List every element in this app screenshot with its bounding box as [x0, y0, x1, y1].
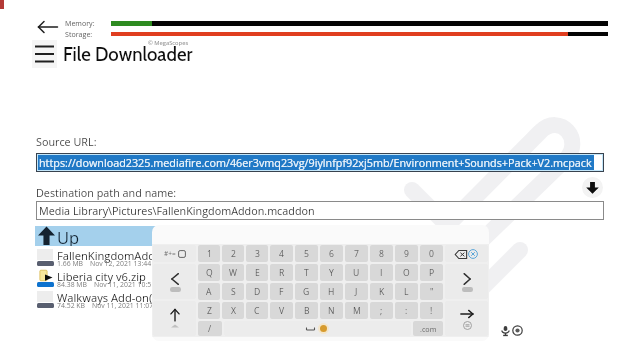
button[interactable]: R	[270, 264, 293, 281]
button[interactable]: F	[270, 283, 293, 300]
button[interactable]: G	[295, 283, 318, 300]
staticText: .com	[420, 324, 437, 334]
staticText: I	[380, 267, 383, 279]
staticText: Media Library\Pictures\FallenKingdomAddo…	[39, 203, 315, 218]
button[interactable]: :	[395, 302, 418, 319]
staticText: :	[405, 305, 408, 317]
staticText: https://download2325.mediafire.com/46er3…	[39, 155, 592, 170]
button[interactable]: V	[270, 302, 293, 319]
staticText: G	[303, 286, 310, 298]
button[interactable]: J	[345, 283, 368, 300]
staticText: Nov 11, 2021 10:5	[94, 280, 152, 289]
staticText: N	[328, 305, 335, 317]
button[interactable]: T	[295, 264, 318, 281]
staticText: Walkways Add-on(v1	[57, 290, 165, 305]
button[interactable]: U	[345, 264, 368, 281]
staticText: 7	[354, 248, 359, 260]
staticText: T	[304, 267, 309, 279]
button[interactable]: P	[420, 264, 443, 281]
staticText: 74.52 KB	[57, 301, 86, 310]
staticText: F	[279, 286, 284, 298]
staticText: FallenKingdomAddon.mcad	[57, 248, 201, 263]
button[interactable]: 3	[246, 245, 268, 262]
button[interactable]: /	[198, 321, 222, 336]
staticText: Destination path and name:	[36, 185, 177, 200]
button[interactable]: 4	[270, 245, 293, 262]
staticText: 9	[404, 248, 409, 260]
staticText: ;	[380, 305, 383, 317]
staticText: Nov 12, 2021 13:44	[90, 259, 152, 268]
button[interactable]: Q	[198, 264, 220, 281]
staticText: W	[229, 267, 237, 279]
button[interactable]: E	[246, 264, 268, 281]
button[interactable]: Media Library\Pictures\FallenKingdomAddo…	[36, 201, 604, 220]
staticText: Up	[57, 226, 80, 246]
button[interactable]: M	[345, 302, 368, 319]
button[interactable]: FallenKingdomAddon.mcad	[35, 247, 317, 268]
staticText: /	[208, 323, 212, 335]
button[interactable]: K	[370, 283, 393, 300]
button[interactable]: Y	[320, 264, 343, 281]
staticText: U	[353, 267, 360, 279]
button[interactable]: https://download2325.mediafire.com/46er3…	[36, 153, 604, 172]
button[interactable]: Up	[35, 226, 317, 246]
button[interactable]: Next field	[445, 264, 488, 299]
button[interactable]: !	[420, 302, 443, 319]
button[interactable]: L	[395, 283, 418, 300]
staticText: L	[404, 286, 409, 298]
staticText: 8	[379, 248, 384, 260]
button[interactable]: Walkways Add-on(v1	[35, 289, 317, 310]
button[interactable]: Menu	[32, 40, 57, 68]
button[interactable]: H	[320, 283, 343, 300]
staticText: S	[231, 286, 236, 298]
button[interactable]: Download	[582, 177, 603, 198]
button[interactable]: ;	[370, 302, 393, 319]
button[interactable]: Voice input	[501, 325, 523, 336]
staticText: A	[206, 286, 212, 298]
button[interactable]: X	[222, 302, 244, 319]
button[interactable]: Symbols	[153, 245, 196, 262]
staticText: "	[430, 286, 434, 298]
button[interactable]: 2	[222, 245, 244, 262]
button[interactable]: Space	[224, 321, 411, 336]
staticText: Y	[329, 267, 334, 279]
staticText: Source URL:	[36, 134, 97, 149]
staticText: Storage:	[65, 29, 93, 39]
button[interactable]: N	[320, 302, 343, 319]
button[interactable]: 7	[345, 245, 368, 262]
button[interactable]: .com	[413, 321, 443, 336]
button[interactable]: "	[420, 283, 443, 300]
button[interactable]: Shift	[153, 264, 196, 299]
button[interactable]: 0	[420, 245, 443, 262]
staticText: #+=	[164, 249, 176, 258]
staticText: V	[279, 305, 285, 317]
staticText: M	[353, 305, 361, 317]
button[interactable]: 6	[320, 245, 343, 262]
button[interactable]: Back	[37, 18, 59, 36]
button[interactable]: Z	[198, 302, 220, 319]
button[interactable]: S	[222, 283, 244, 300]
staticText: H	[328, 286, 335, 298]
button[interactable]: W	[222, 264, 244, 281]
button[interactable]: Delete	[445, 245, 488, 262]
button[interactable]: 8	[370, 245, 393, 262]
button[interactable]: Caps	[153, 301, 196, 336]
staticText: 4	[279, 248, 284, 260]
button[interactable]: I	[370, 264, 393, 281]
button[interactable]: 5	[295, 245, 318, 262]
button[interactable]: D	[246, 283, 268, 300]
staticText: B	[304, 305, 310, 317]
button[interactable]: Enter	[445, 301, 488, 336]
button[interactable]: Liberia city v6.zip	[35, 268, 317, 289]
button[interactable]: 1	[198, 245, 220, 262]
button[interactable]: 9	[395, 245, 418, 262]
staticText: 84.38 MB	[57, 280, 88, 289]
staticText: 1	[207, 248, 212, 260]
button[interactable]: B	[295, 302, 318, 319]
button[interactable]: O	[395, 264, 418, 281]
button[interactable]: C	[246, 302, 268, 319]
staticText: C	[254, 305, 260, 317]
staticText: 3	[255, 248, 260, 260]
button[interactable]: A	[198, 283, 220, 300]
staticText: 2	[231, 248, 236, 260]
